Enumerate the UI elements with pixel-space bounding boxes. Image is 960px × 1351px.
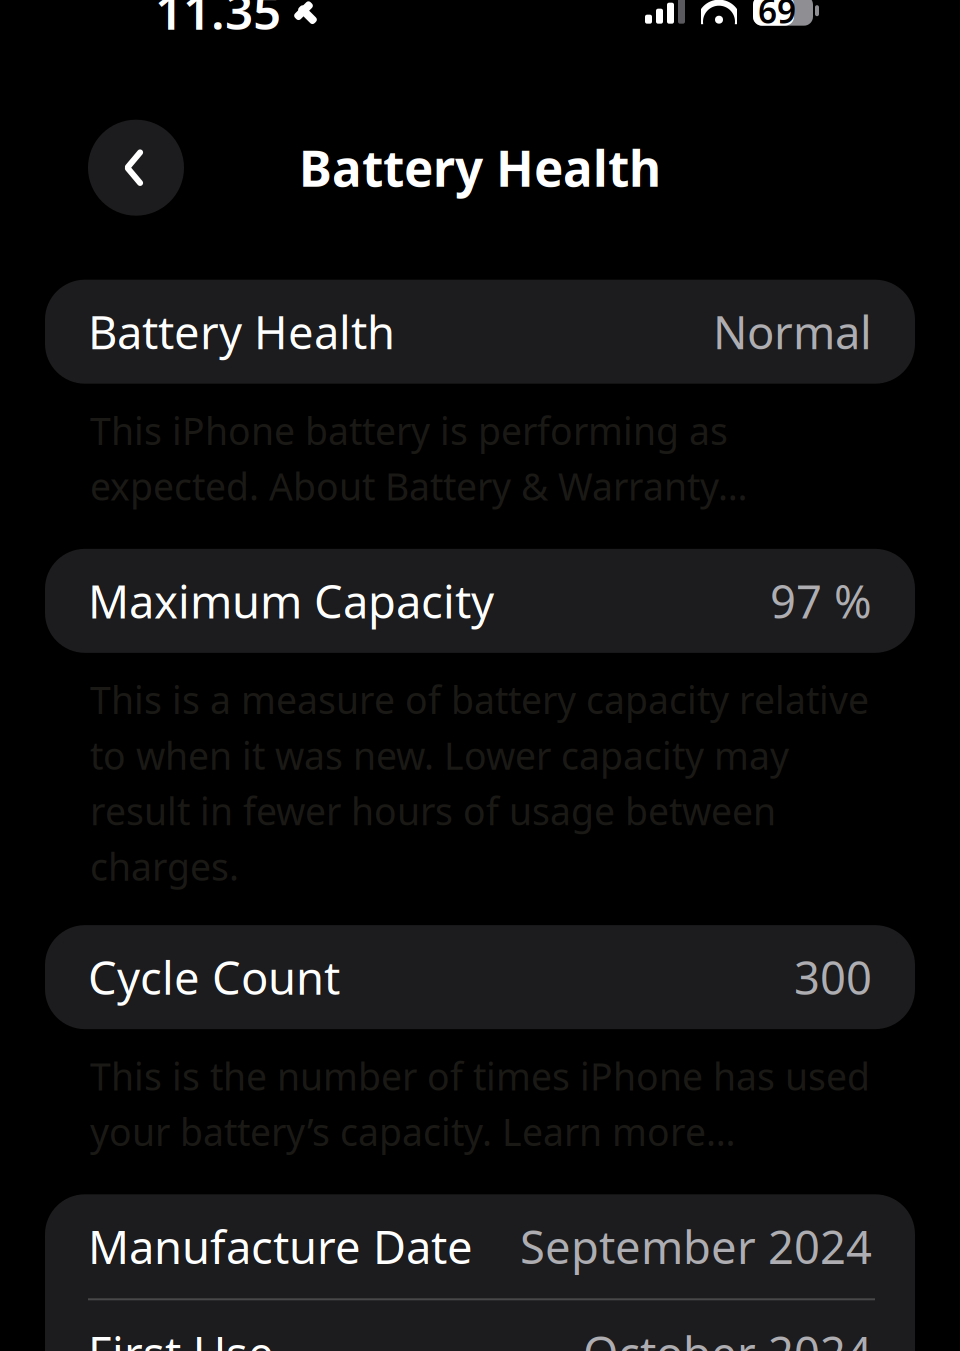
staticText: Cycle Count [88,947,340,1007]
staticText: This is a measure of battery capacity re… [90,675,869,891]
staticText: 300 [794,947,872,1007]
staticText: Normal [713,302,872,362]
staticText: 11.35 [155,0,281,43]
staticText: 97 % [770,571,872,631]
staticText: This is the number of times iPhone has u… [90,1051,870,1156]
staticText: This iPhone battery is performing as exp… [90,406,748,511]
staticText: Maximum Capacity [88,571,494,631]
staticText: Battery Health [299,135,661,200]
staticText: September 2024 [520,1216,872,1276]
staticText: October 2024 [583,1322,872,1351]
button[interactable]: Battery Health [45,280,915,384]
button[interactable]: Back [88,120,184,216]
button[interactable]: Maximum Capacity [45,549,915,653]
staticText: Battery Health [88,302,395,362]
button[interactable]: Cycle Count [45,925,915,1029]
staticText: Manufacture Date [88,1216,473,1276]
button[interactable]: Manufacture Date [45,1194,915,1298]
staticText: 69 [758,0,796,33]
button[interactable]: First Use [45,1300,915,1351]
staticText: First Use [88,1322,274,1351]
